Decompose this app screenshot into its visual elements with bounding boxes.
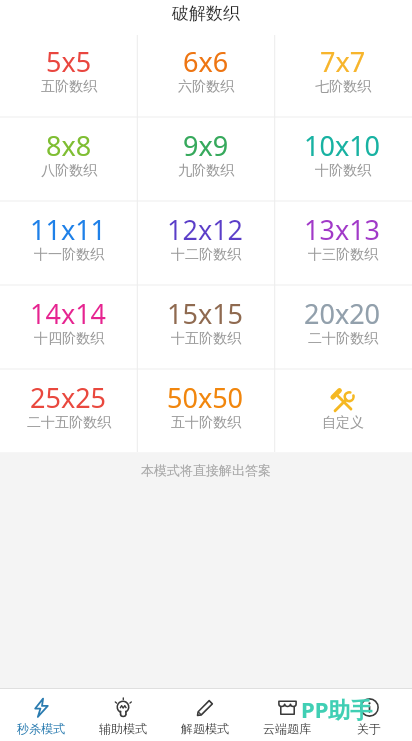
staticText: 11x11 (30, 211, 107, 248)
staticText: 9x9 (183, 127, 229, 164)
button[interactable]: 50x50 (137, 369, 274, 453)
staticText: 十二阶数织 (171, 246, 241, 264)
button[interactable]: 秒杀模式 (0, 689, 82, 741)
staticText: 8x8 (46, 127, 92, 164)
staticText: 14x14 (30, 295, 107, 332)
button[interactable]: 12x12 (137, 201, 274, 285)
staticText: 关于 (357, 721, 381, 736)
staticText: 五阶数织 (41, 78, 97, 96)
button[interactable]: 25x25 (0, 369, 137, 453)
button[interactable]: 辅助模式 (82, 689, 164, 741)
button[interactable]: 5x5 (0, 33, 137, 117)
staticText: 10x10 (304, 127, 381, 164)
button[interactable]: 20x20 (274, 285, 411, 369)
button[interactable]: 云端题库 (246, 689, 328, 741)
staticText: 十三阶数织 (308, 246, 378, 264)
button[interactable]: 9x9 (137, 117, 274, 201)
staticText: 十阶数织 (315, 162, 371, 180)
staticText: 秒杀模式 (17, 721, 65, 736)
button[interactable]: 关于 (328, 689, 410, 741)
staticText: 二十五阶数织 (27, 414, 111, 432)
button[interactable]: 自定义 (274, 369, 411, 453)
button[interactable]: 10x10 (274, 117, 411, 201)
staticText: 12x12 (167, 211, 244, 248)
staticText: 八阶数织 (41, 162, 97, 180)
staticText: 自定义 (322, 414, 364, 432)
staticText: 七阶数织 (315, 78, 371, 96)
button[interactable]: 6x6 (137, 33, 274, 117)
staticText: 7x7 (320, 43, 366, 80)
staticText: 5x5 (46, 43, 92, 80)
staticText: 50x50 (167, 379, 244, 416)
staticText: 6x6 (183, 43, 229, 80)
button[interactable]: 15x15 (137, 285, 274, 369)
staticText: 解题模式 (181, 721, 229, 736)
button[interactable]: 13x13 (274, 201, 411, 285)
staticText: 九阶数织 (178, 162, 234, 180)
staticText: PP助手 (301, 694, 373, 724)
button[interactable]: 解题模式 (164, 689, 246, 741)
staticText: 六阶数织 (178, 78, 234, 96)
staticText: 五十阶数织 (171, 414, 241, 432)
staticText: 十一阶数织 (34, 246, 104, 264)
staticText: 十五阶数织 (171, 330, 241, 348)
button[interactable]: 7x7 (274, 33, 411, 117)
staticText: 十四阶数织 (34, 330, 104, 348)
staticText: 二十阶数织 (308, 330, 378, 348)
staticText: 20x20 (304, 295, 381, 332)
button[interactable]: 14x14 (0, 285, 137, 369)
staticText: 15x15 (167, 295, 244, 332)
staticText: 云端题库 (263, 721, 311, 736)
staticText: 破解数织 (172, 3, 240, 24)
button[interactable]: 8x8 (0, 117, 137, 201)
staticText: 辅助模式 (99, 721, 147, 736)
staticText: 13x13 (304, 211, 381, 248)
staticText: 25x25 (30, 379, 107, 416)
staticText: 本模式将直接解出答案 (141, 462, 271, 478)
button[interactable]: 11x11 (0, 201, 137, 285)
